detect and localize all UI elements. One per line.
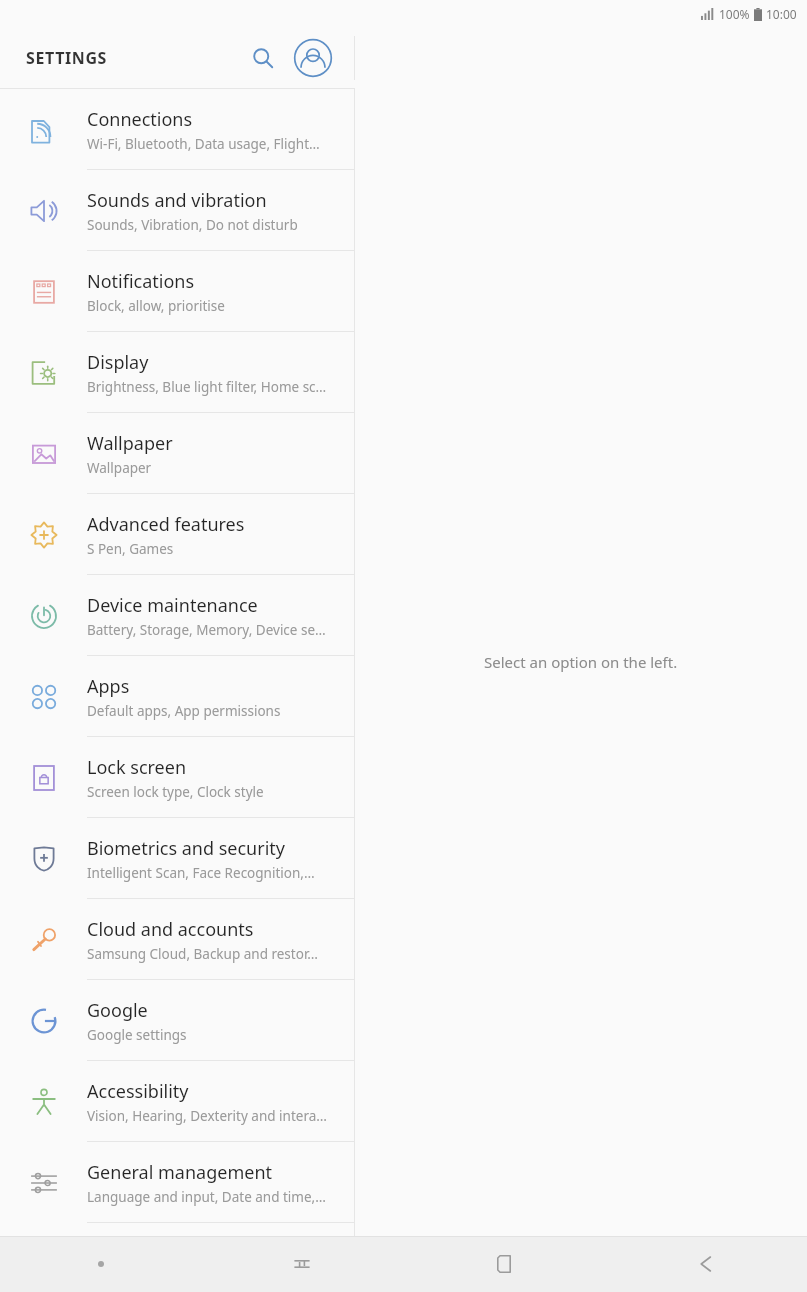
button[interactable]: Advanced features: [0, 494, 354, 575]
staticText: Cloud and accounts: [87, 917, 254, 942]
staticText: Display: [87, 350, 149, 375]
staticText: 100%: [719, 6, 750, 22]
button[interactable]: Recents: [201, 1236, 403, 1292]
staticText: Wallpaper: [87, 431, 173, 456]
button[interactable]: Account: [290, 35, 336, 81]
button[interactable]: Home: [403, 1236, 605, 1292]
staticText: Block, allow, prioritise: [87, 297, 225, 315]
staticText: Advanced features: [87, 512, 245, 537]
staticText: Wallpaper: [87, 459, 152, 477]
button[interactable]: Notifications: [0, 251, 354, 332]
button[interactable]: Connections: [0, 89, 354, 170]
staticText: Vision, Hearing, Dexterity and intera…: [87, 1107, 327, 1125]
staticText: SETTINGS: [26, 47, 107, 69]
staticText: General management: [87, 1160, 273, 1185]
staticText: Sounds, Vibration, Do not disturb: [87, 216, 298, 234]
button[interactable]: Display: [0, 332, 354, 413]
button[interactable]: Device maintenance: [0, 575, 354, 656]
staticText: Brightness, Blue light filter, Home sc…: [87, 378, 327, 396]
button[interactable]: Back: [605, 1236, 807, 1292]
button[interactable]: Biometrics and security: [0, 818, 354, 899]
staticText: Lock screen: [87, 755, 187, 780]
button[interactable]: Cloud and accounts: [0, 899, 354, 980]
button[interactable]: General management: [0, 1142, 354, 1223]
staticText: Accessibility: [87, 1079, 189, 1104]
button[interactable]: Apps: [0, 656, 354, 737]
staticText: Google: [87, 998, 148, 1023]
staticText: Connections: [87, 107, 193, 132]
button[interactable]: Search: [240, 35, 286, 81]
staticText: Samsung Cloud, Backup and restor…: [87, 945, 318, 963]
staticText: Language and input, Date and time,…: [87, 1188, 326, 1206]
button[interactable]: Lock screen: [0, 737, 354, 818]
button[interactable]: Google: [0, 980, 354, 1061]
button[interactable]: Sounds and vibration: [0, 170, 354, 251]
button[interactable]: Wallpaper: [0, 413, 354, 494]
staticText: Notifications: [87, 269, 195, 294]
staticText: Device maintenance: [87, 593, 258, 618]
staticText: Sounds and vibration: [87, 188, 267, 213]
staticText: Select an option on the left.: [484, 652, 678, 672]
button[interactable]: Menu dot: [0, 1236, 201, 1292]
staticText: 10:00: [766, 6, 797, 22]
staticText: Google settings: [87, 1026, 187, 1044]
staticText: Intelligent Scan, Face Recognition,…: [87, 864, 315, 882]
staticText: Wi-Fi, Bluetooth, Data usage, Flight…: [87, 135, 320, 153]
staticText: S Pen, Games: [87, 540, 174, 558]
staticText: Screen lock type, Clock style: [87, 783, 264, 801]
button[interactable]: Accessibility: [0, 1061, 354, 1142]
staticText: Biometrics and security: [87, 836, 285, 861]
staticText: Apps: [87, 674, 130, 699]
staticText: Default apps, App permissions: [87, 702, 281, 720]
staticText: Battery, Storage, Memory, Device se…: [87, 621, 326, 639]
